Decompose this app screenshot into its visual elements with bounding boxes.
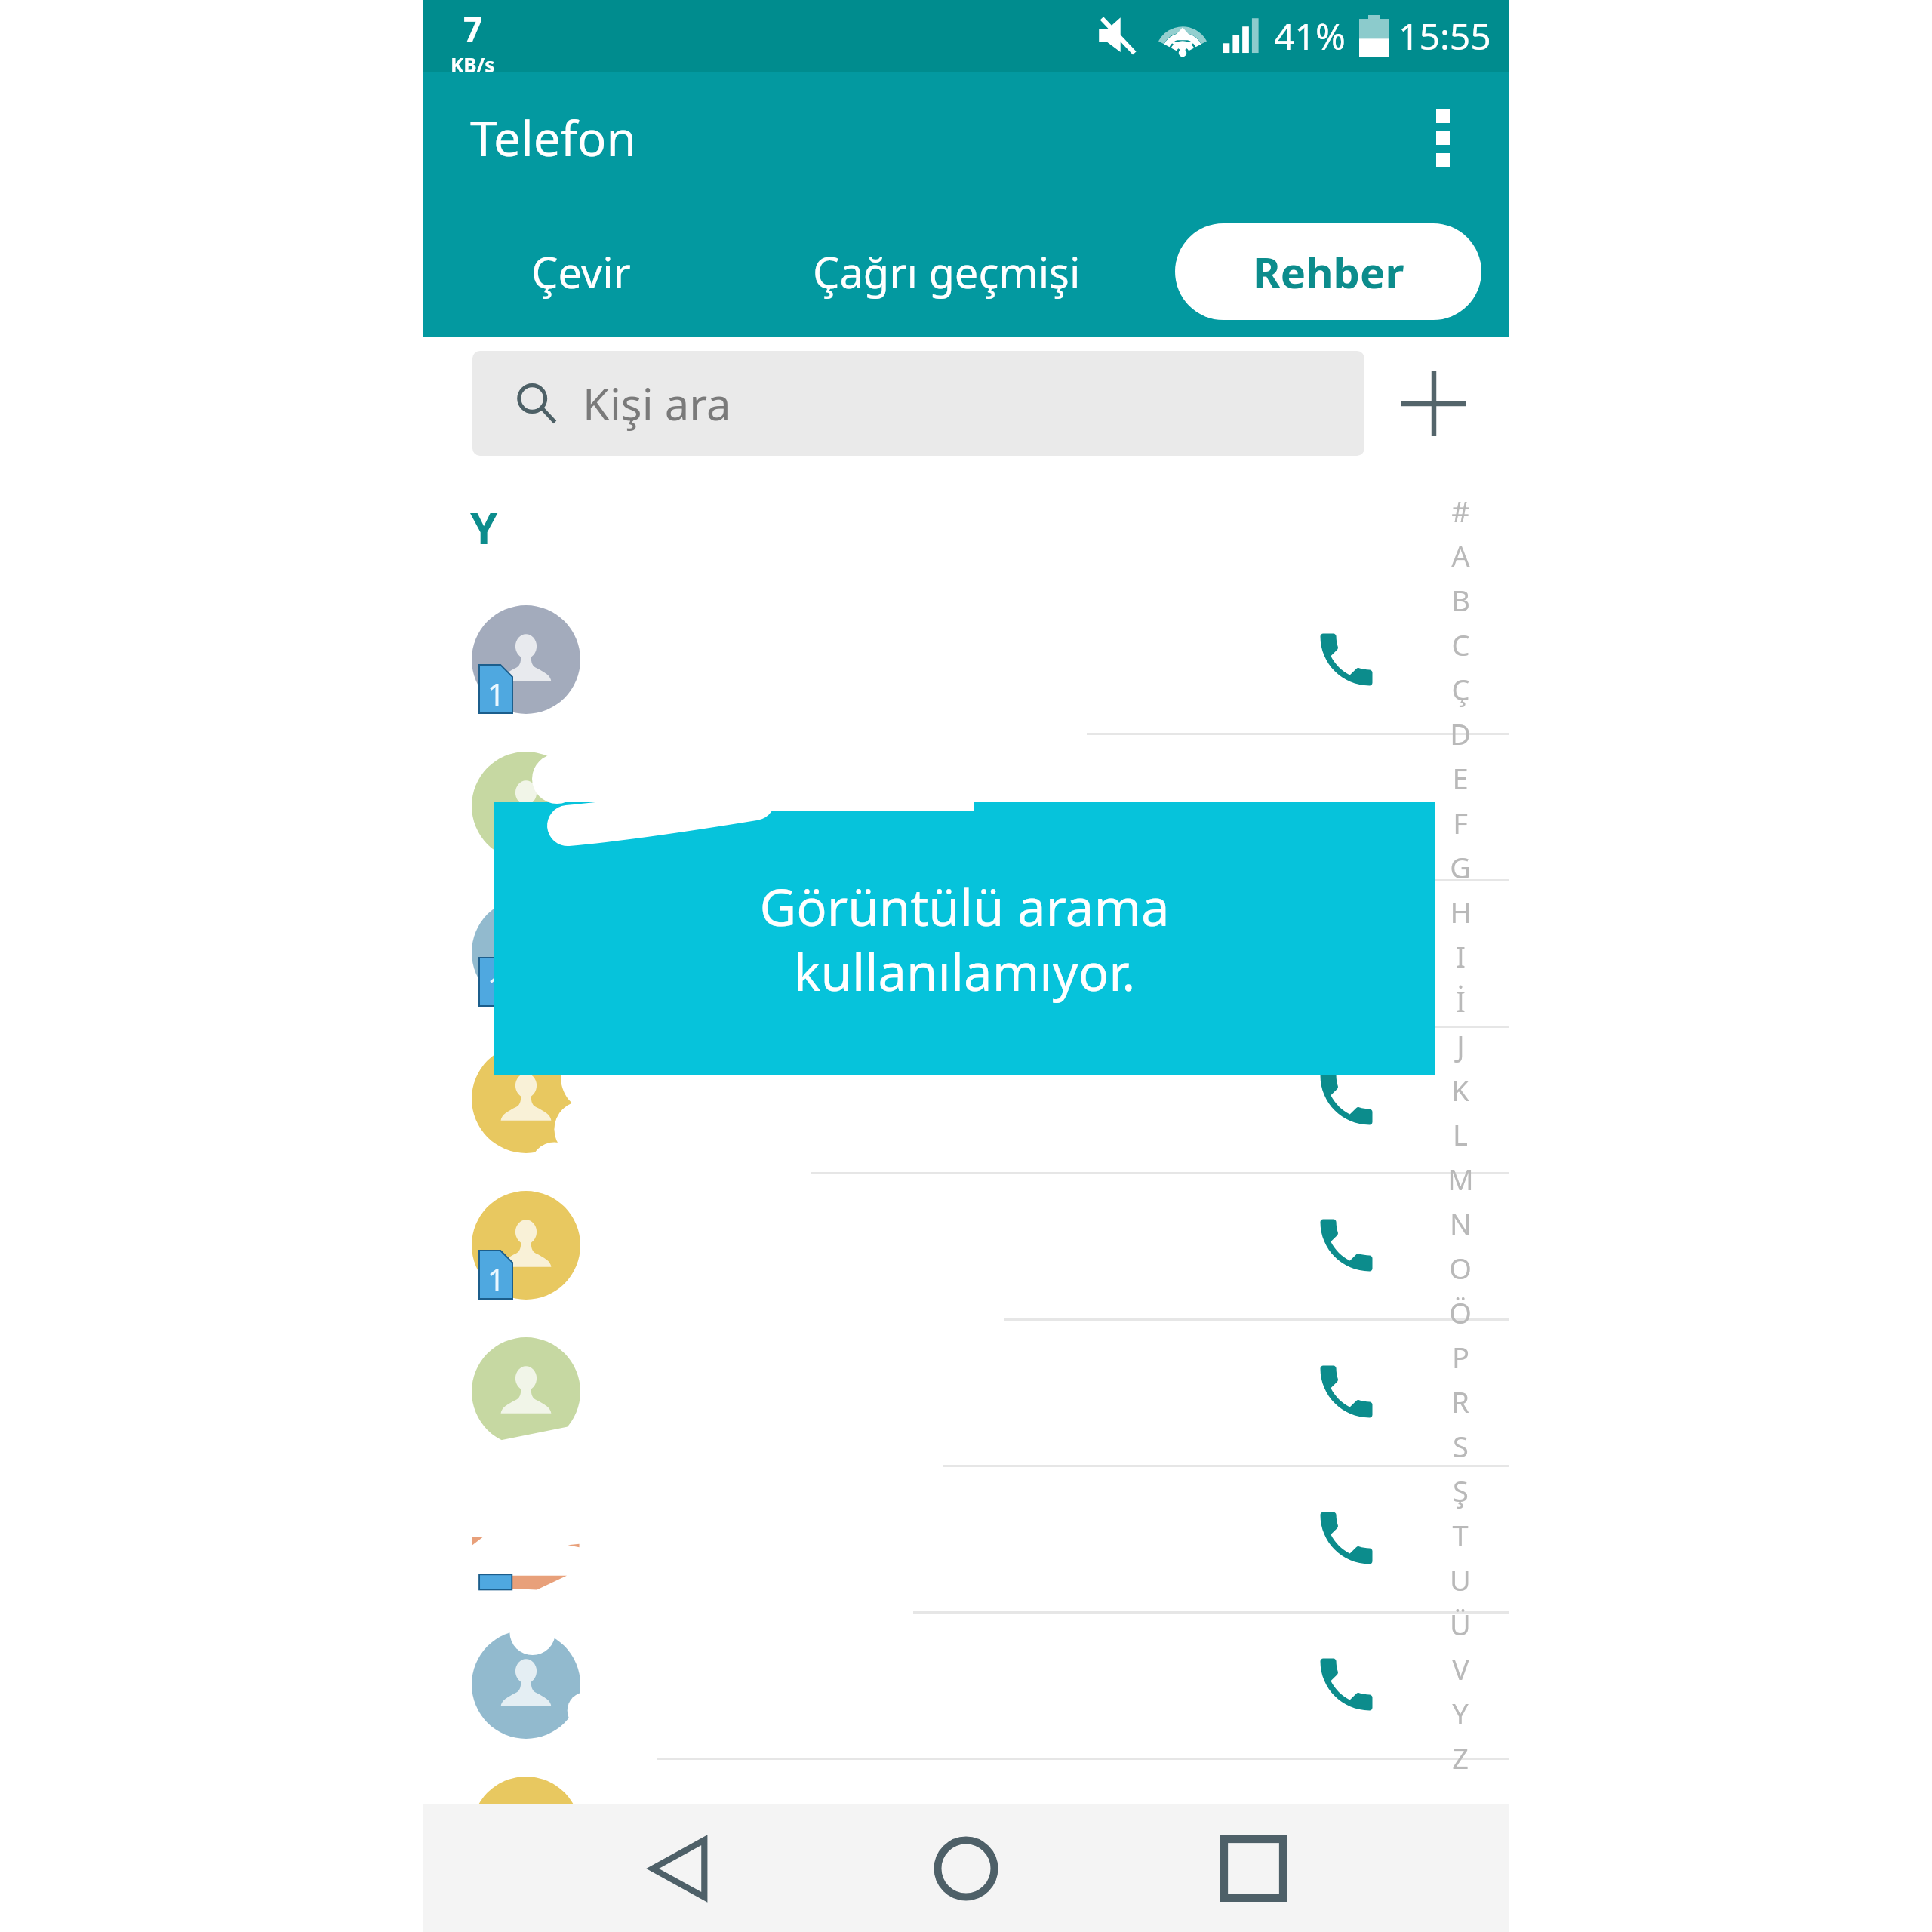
staticText: Rehber: [1253, 243, 1404, 300]
staticText: T: [1452, 1515, 1469, 1555]
button[interactable]: Call: [1294, 1339, 1399, 1444]
staticText: 1: [488, 673, 505, 714]
button[interactable]: Call: [1294, 1485, 1399, 1591]
staticText: S: [1453, 1426, 1469, 1466]
staticText: B: [1451, 580, 1470, 620]
button[interactable]: [423, 1611, 1509, 1758]
button[interactable]: More options: [1391, 86, 1495, 190]
staticText: G: [1450, 848, 1471, 887]
button[interactable]: Kişi ara: [472, 351, 1364, 456]
button[interactable]: [423, 1318, 1509, 1465]
button[interactable]: Add contact: [1381, 351, 1486, 456]
staticText: KB/s: [451, 51, 495, 78]
staticText: Ü: [1450, 1604, 1471, 1644]
button[interactable]: [423, 586, 1509, 733]
staticText: U: [1450, 1560, 1471, 1599]
staticText: İ: [1456, 981, 1466, 1020]
staticText: 1: [488, 1552, 505, 1592]
staticText: Kişi ara: [583, 374, 731, 433]
staticText: Telefon: [470, 105, 637, 171]
button[interactable]: Call: [1294, 1046, 1399, 1152]
button[interactable]: Çevir: [498, 223, 664, 320]
button[interactable]: Call: [1294, 607, 1399, 712]
button[interactable]: Call: [1294, 1778, 1399, 1884]
staticText: F: [1453, 803, 1468, 842]
staticText: R: [1451, 1382, 1469, 1421]
staticText: O: [1449, 1248, 1472, 1287]
button[interactable]: [423, 1758, 1509, 1904]
staticText: M: [1447, 1159, 1474, 1198]
staticText: N: [1450, 1204, 1472, 1243]
staticText: Çevir: [531, 243, 631, 300]
button[interactable]: [423, 1026, 1509, 1172]
button[interactable]: [423, 733, 1509, 879]
button[interactable]: [423, 1465, 1509, 1611]
button[interactable]: Call: [1294, 1632, 1399, 1737]
staticText: Çağrı geçmişi: [813, 243, 1081, 300]
staticText: K: [1451, 1070, 1469, 1109]
staticText: Ö: [1449, 1293, 1472, 1332]
button[interactable]: Çağrı geçmişi: [761, 223, 1131, 320]
button[interactable]: Call: [1294, 753, 1399, 859]
button[interactable]: Home: [906, 1804, 1026, 1932]
staticText: Görüntülü arama kullanılamıyor.: [759, 872, 1170, 1006]
staticText: 1: [488, 1259, 505, 1300]
staticText: H: [1450, 892, 1472, 931]
button[interactable]: Rehber: [1175, 223, 1481, 320]
staticText: Y: [1452, 1694, 1469, 1733]
button[interactable]: [423, 879, 1509, 1026]
staticText: E: [1452, 758, 1469, 798]
staticText: Ş: [1453, 1471, 1469, 1510]
staticText: V: [1452, 1649, 1469, 1688]
staticText: 41%: [1274, 11, 1346, 60]
button[interactable]: [423, 1172, 1509, 1318]
staticText: P: [1452, 1337, 1469, 1377]
staticText: #: [1451, 491, 1470, 531]
staticText: Z: [1452, 1738, 1469, 1777]
staticText: A: [1451, 536, 1470, 575]
button[interactable]: Call: [1294, 1192, 1399, 1298]
staticText: L: [1453, 1115, 1468, 1154]
button[interactable]: Alphabet index: [1423, 488, 1498, 1780]
button[interactable]: Recent apps: [1193, 1804, 1314, 1932]
staticText: 15:55: [1398, 11, 1491, 60]
staticText: Y: [470, 497, 498, 557]
staticText: D: [1450, 714, 1471, 753]
staticText: C: [1451, 625, 1470, 664]
staticText: Ç: [1451, 669, 1470, 709]
staticText: 7: [463, 6, 483, 51]
staticText: I: [1456, 937, 1466, 976]
button[interactable]: Back: [618, 1804, 739, 1932]
staticText: 1: [488, 966, 505, 1007]
staticText: J: [1457, 1026, 1465, 1065]
